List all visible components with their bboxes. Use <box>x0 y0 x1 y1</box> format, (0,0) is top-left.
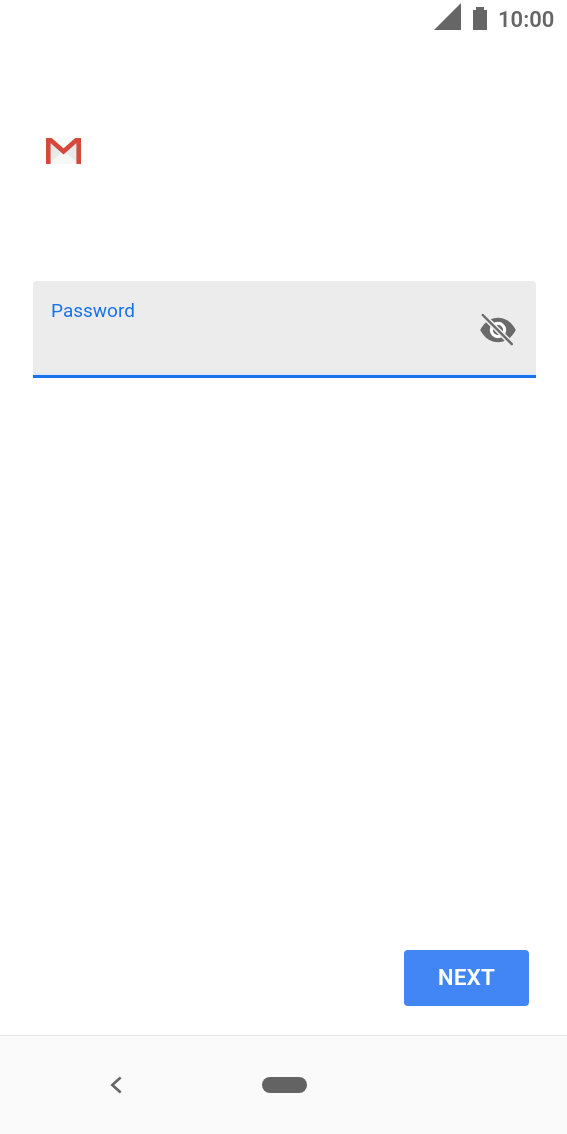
staticText: Password <box>51 299 135 321</box>
staticText: 10:00 <box>498 7 555 33</box>
button[interactable]: NEXT <box>404 950 529 1006</box>
button[interactable] <box>33 281 536 375</box>
staticText: NEXT <box>438 965 495 991</box>
button[interactable]: Show password <box>470 302 526 358</box>
other: Signal strength <box>434 3 461 30</box>
other: Battery <box>473 7 487 30</box>
button[interactable]: Back <box>92 1061 140 1109</box>
button[interactable]: Home <box>254 1061 314 1109</box>
